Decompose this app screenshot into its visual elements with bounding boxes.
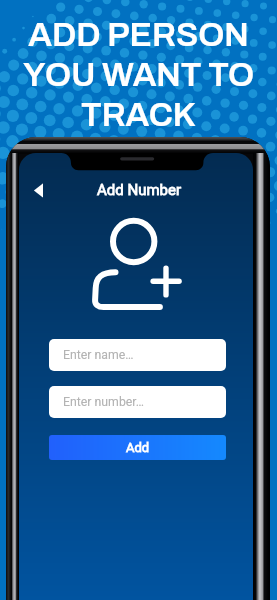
staticText: Add Number [97,181,182,199]
button[interactable]: Add [49,435,226,460]
button[interactable]: Enter name… [49,339,226,371]
staticText: Add [126,440,150,455]
staticText: Enter number… [63,395,144,409]
staticText: Enter name… [63,348,134,362]
staticText: ADD PERSON YOU WANT TO TRACK [0,17,277,133]
button[interactable]: Enter number… [49,386,226,418]
button[interactable]: Back [22,175,53,205]
